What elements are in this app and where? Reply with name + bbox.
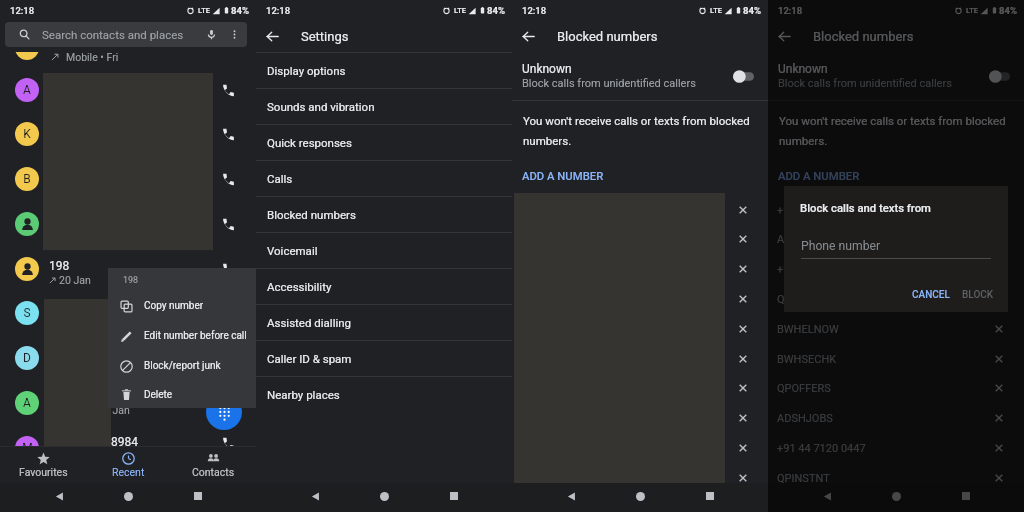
button[interactable]: ADSHJOBS	[512, 403, 768, 433]
button[interactable]: Call	[215, 167, 239, 191]
button[interactable]: Nearby places	[256, 377, 512, 412]
button[interactable]: Favourites	[0, 447, 86, 483]
button[interactable]: Unblock	[732, 199, 754, 221]
button[interactable]	[15, 212, 39, 236]
button[interactable]: Accessibility	[256, 269, 512, 304]
button[interactable]: Unblock	[732, 407, 754, 429]
button[interactable]: QPINSTNT	[512, 463, 768, 493]
button[interactable]: K	[15, 122, 39, 146]
button[interactable]: Unblock	[732, 288, 754, 310]
button[interactable]: Recents	[699, 485, 721, 507]
button[interactable]: Calls	[256, 161, 512, 196]
button[interactable]: A	[15, 391, 39, 415]
button[interactable]: Unblock	[988, 258, 1010, 280]
button[interactable]: +91 44 7120 0447	[512, 433, 768, 463]
button[interactable]: Unknown	[768, 52, 1024, 100]
button[interactable]: Copy number	[108, 291, 260, 321]
button[interactable]: Display options	[256, 53, 512, 88]
button[interactable]: Navigate up	[768, 20, 800, 52]
button[interactable]: Unblock	[988, 348, 1010, 370]
button[interactable]	[15, 257, 39, 281]
button[interactable]: Home	[629, 485, 651, 507]
button[interactable]: Unknown	[512, 52, 768, 100]
button[interactable]: BWHELNOW	[512, 314, 768, 344]
button[interactable]: Recents	[955, 485, 977, 507]
button[interactable]: Block calls and texts from	[784, 186, 1008, 312]
button[interactable]: Unblock	[988, 377, 1010, 399]
button[interactable]: Quick responses	[256, 125, 512, 160]
button[interactable]: Navigate up	[256, 20, 288, 52]
button[interactable]: Block/report junk	[108, 351, 260, 381]
button[interactable]: Unblock	[988, 228, 1010, 250]
button[interactable]: Unblock	[732, 318, 754, 340]
button[interactable]: ADD A NUMBER	[522, 170, 604, 183]
button[interactable]: +91 84 3838 3838	[768, 195, 1024, 225]
button[interactable]: Call	[215, 346, 239, 370]
button[interactable]: Call	[215, 431, 239, 455]
button[interactable]: Call	[215, 122, 239, 146]
button[interactable]: Back	[48, 485, 70, 507]
button[interactable]: Block unknown callers toggle	[981, 66, 1017, 86]
button[interactable]: Voicemail	[256, 233, 512, 268]
button[interactable]: Block unknown callers toggle	[725, 66, 761, 86]
button[interactable]: Recent	[86, 447, 171, 483]
button[interactable]: Delete	[108, 381, 260, 408]
button[interactable]: BWHELNOW	[768, 314, 1024, 344]
button[interactable]: Blocked numbers	[256, 197, 512, 232]
button[interactable]: +91 99 7171 0088	[512, 254, 768, 284]
button[interactable]: Home	[885, 485, 907, 507]
button[interactable]: AD-PYTMPB	[512, 224, 768, 254]
button[interactable]: Call	[215, 78, 239, 102]
button[interactable]: A	[15, 78, 39, 102]
button[interactable]: M	[15, 436, 39, 460]
button[interactable]: QPINSTNT	[768, 284, 1024, 314]
button[interactable]: Call	[215, 257, 239, 281]
button[interactable]: Unblock	[988, 467, 1010, 489]
button[interactable]: Recents	[443, 485, 465, 507]
button[interactable]: BWHSECHK	[768, 344, 1024, 374]
button[interactable]: ADD A NUMBER	[778, 170, 860, 183]
button[interactable]: Caller ID & spam	[256, 341, 512, 376]
button[interactable]: Unblock	[988, 437, 1010, 459]
button[interactable]: Back	[816, 485, 838, 507]
button[interactable]: Back	[304, 485, 326, 507]
button[interactable]: Dialpad	[206, 394, 242, 430]
button[interactable]: D	[15, 346, 39, 370]
button[interactable]: QPOFFERS	[768, 373, 1024, 403]
button[interactable]: Recents	[187, 485, 209, 507]
button[interactable]: BLOCK	[959, 284, 1004, 306]
button[interactable]: Unblock	[732, 467, 754, 489]
button[interactable]: Contacts	[171, 447, 256, 483]
button[interactable]: ADSHJOBS	[768, 403, 1024, 433]
button[interactable]: +91 44 7120 0447	[768, 433, 1024, 463]
button[interactable]: Edit number before call	[108, 321, 260, 351]
button[interactable]: B	[15, 167, 39, 191]
button[interactable]: BWHSECHK	[512, 344, 768, 374]
button[interactable]: Unblock	[732, 437, 754, 459]
button[interactable]: Sounds and vibration	[256, 89, 512, 124]
button[interactable]: Unblock	[732, 377, 754, 399]
button[interactable]: Unblock	[988, 288, 1010, 310]
button[interactable]: Search contacts and places	[5, 22, 247, 47]
button[interactable]: Unblock	[988, 318, 1010, 340]
button[interactable]: QPINSTNT	[768, 463, 1024, 493]
button[interactable]: +91 84 3838 3838	[512, 195, 768, 225]
button[interactable]: QPINSTNT	[512, 284, 768, 314]
button[interactable]: Unblock	[732, 348, 754, 370]
button[interactable]: Unblock	[988, 199, 1010, 221]
button[interactable]: Assisted dialling	[256, 305, 512, 340]
button[interactable]: CANCEL	[903, 284, 959, 306]
button[interactable]: Call	[215, 391, 239, 415]
button[interactable]: S	[15, 301, 39, 325]
button[interactable]: +91 99 7171 0088	[768, 254, 1024, 284]
button[interactable]: QPOFFERS	[512, 373, 768, 403]
button[interactable]: Call	[215, 212, 239, 236]
button[interactable]: Home	[117, 485, 139, 507]
button[interactable]: Navigate up	[512, 20, 544, 52]
button[interactable]: Unblock	[732, 228, 754, 250]
button[interactable]: Home	[373, 485, 395, 507]
button[interactable]: Unblock	[988, 407, 1010, 429]
button[interactable]: AD-PYTMPB	[768, 224, 1024, 254]
button[interactable]: Unblock	[732, 258, 754, 280]
